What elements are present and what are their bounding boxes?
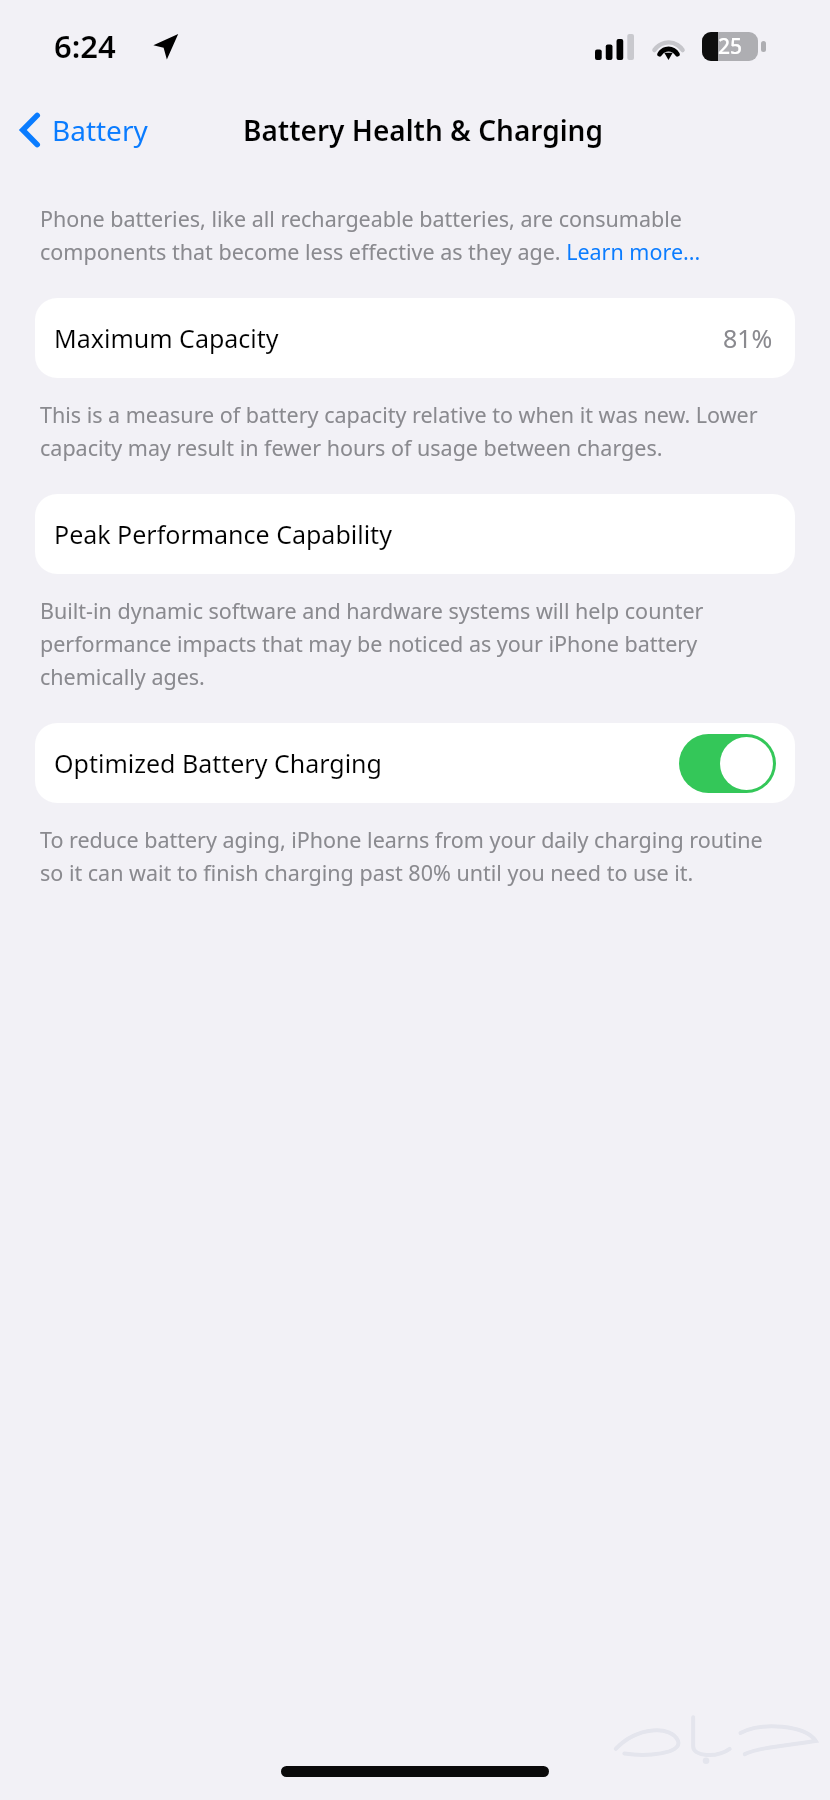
staticText: 81% <box>723 321 773 355</box>
button[interactable]: Optimized Battery Charging <box>35 723 795 803</box>
staticText: Optimized Battery Charging <box>54 746 382 780</box>
staticText: 25 <box>718 32 743 61</box>
staticText: Maximum Capacity <box>54 321 279 355</box>
staticText: To reduce battery aging, iPhone learns f… <box>40 825 780 887</box>
staticText: Phone batteries, like all rechargeable b… <box>40 204 780 266</box>
button[interactable]: Peak Performance Capability <box>35 494 795 574</box>
staticText: Battery Health & Charging <box>243 111 603 149</box>
staticText: 6:24 <box>54 25 116 67</box>
button[interactable]: Battery <box>0 103 162 157</box>
staticText: Peak Performance Capability <box>54 517 392 551</box>
staticText: This is a measure of battery capacity re… <box>40 400 780 462</box>
staticText: Built-in dynamic software and hardware s… <box>40 596 780 691</box>
staticText: Battery <box>52 111 148 149</box>
button[interactable]: Optimized Battery Charging <box>679 734 776 793</box>
button[interactable]: Maximum Capacity <box>35 298 795 378</box>
